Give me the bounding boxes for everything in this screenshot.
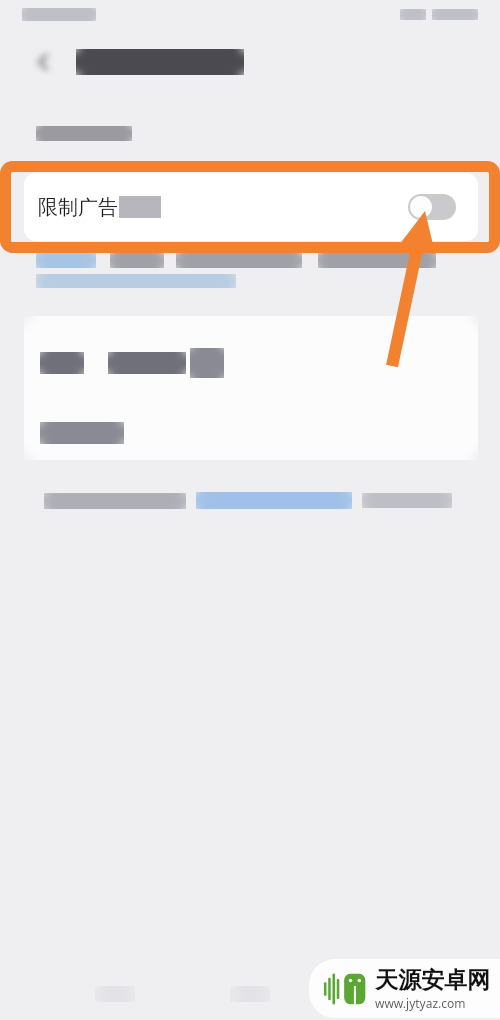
staticText: 限制广告 bbox=[38, 195, 118, 220]
staticText: www.jytyaz.com bbox=[375, 995, 466, 1011]
button[interactable]: Limit ad tracking toggle bbox=[408, 194, 456, 220]
button[interactable]: Back bbox=[30, 48, 58, 76]
button[interactable]: 限制广告 bbox=[24, 173, 478, 241]
staticText: 天源安卓网 bbox=[375, 966, 490, 995]
